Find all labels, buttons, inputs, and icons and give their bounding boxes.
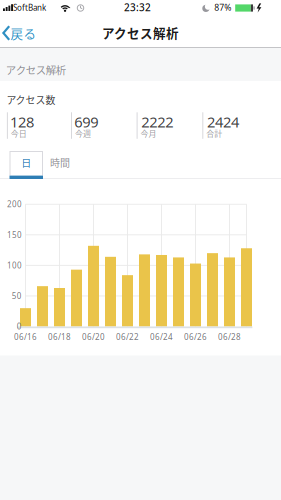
staticText: 06/28 [218, 332, 241, 342]
staticText: 150 [7, 229, 22, 240]
button[interactable]: 時間 [45, 150, 75, 174]
staticText: 06/18 [48, 332, 71, 342]
staticText: 06/22 [116, 332, 139, 342]
staticText: 87% [214, 1, 231, 13]
staticText: アクセス数 [6, 93, 55, 107]
staticText: 合計 [206, 127, 222, 139]
button[interactable]: 戻る [0, 0, 42, 28]
staticText: 128 [10, 112, 34, 132]
staticText: 今日 [11, 127, 27, 139]
staticText: 06/24 [150, 332, 173, 342]
staticText: 今月 [140, 127, 156, 139]
staticText: SoftBank [13, 2, 46, 13]
staticText: 200 [7, 199, 22, 209]
staticText: 06/26 [184, 332, 207, 342]
staticText: 日 [21, 155, 31, 170]
staticText: アクセス解析 [102, 23, 179, 42]
staticText: 23:32 [124, 1, 151, 14]
staticText: アクセス解析 [6, 62, 66, 77]
staticText: 0 [17, 321, 22, 332]
staticText: 今週 [75, 127, 91, 139]
staticText: 06/20 [82, 332, 105, 342]
staticText: 100 [7, 260, 22, 271]
staticText: 2424 [207, 112, 239, 132]
staticText: 2222 [141, 112, 173, 132]
button[interactable]: 日 [9, 151, 43, 179]
staticText: 50 [12, 291, 22, 301]
staticText: 06/16 [14, 332, 37, 342]
staticText: 戻る [11, 24, 37, 42]
staticText: 時間 [50, 155, 70, 170]
staticText: 699 [74, 112, 98, 132]
